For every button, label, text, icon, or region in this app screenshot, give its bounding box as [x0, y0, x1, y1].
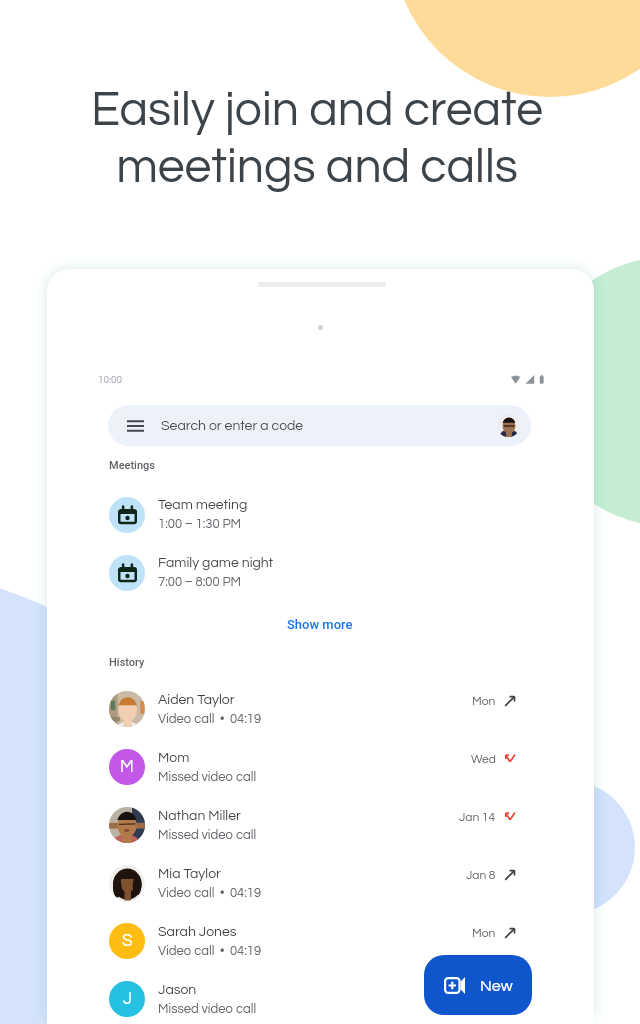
- staticText: Video call • 04:19: [158, 886, 262, 899]
- button[interactable]: Search or enter a code: [108, 405, 531, 446]
- staticText: Search or enter a code: [161, 419, 304, 433]
- staticText: Missed video call: [158, 828, 257, 841]
- button[interactable]: Aiden Taylor: [109, 691, 515, 727]
- staticText: M: [120, 758, 134, 776]
- staticText: S: [122, 932, 133, 950]
- button[interactable]: Team meeting: [109, 497, 409, 533]
- staticText: Jan 8: [466, 869, 496, 881]
- staticText: Nathan Miller: [158, 809, 241, 823]
- staticText: Mon: [472, 927, 496, 939]
- button[interactable]: S: [109, 923, 515, 959]
- staticText: 7:00 – 8:00 PM: [158, 575, 242, 588]
- staticText: Wed: [471, 753, 496, 765]
- button[interactable]: Nathan Miller: [109, 807, 515, 843]
- staticText: J: [123, 990, 132, 1008]
- staticText: Jason: [158, 983, 197, 997]
- staticText: Meetings: [109, 459, 155, 472]
- button[interactable]: J: [109, 981, 515, 1017]
- staticText: Family game night: [158, 556, 274, 570]
- staticText: Video call • 04:19: [158, 712, 262, 725]
- staticText: Missed video call: [158, 1002, 257, 1015]
- staticText: Mia Taylor: [158, 867, 221, 881]
- button[interactable]: M: [109, 749, 515, 785]
- staticText: New: [480, 978, 513, 994]
- staticText: Mon: [472, 695, 496, 707]
- staticText: Mom: [158, 751, 190, 765]
- staticText: Easily join and create meetings and call…: [91, 86, 543, 192]
- button[interactable]: Family game night: [109, 555, 409, 591]
- staticText: Jan 14: [459, 811, 496, 823]
- staticText: History: [109, 656, 145, 669]
- staticText: Team meeting: [158, 498, 248, 512]
- button[interactable]: Show more: [272, 609, 368, 639]
- staticText: Video call • 04:19: [158, 944, 262, 957]
- staticText: 10:00: [98, 375, 123, 385]
- staticText: Show more: [287, 617, 353, 632]
- staticText: 1:00 – 1:30 PM: [158, 517, 242, 530]
- button[interactable]: Mia Taylor: [109, 865, 515, 901]
- staticText: Aiden Taylor: [158, 693, 235, 707]
- staticText: Missed video call: [158, 770, 257, 783]
- staticText: Sarah Jones: [158, 925, 237, 939]
- button[interactable]: New: [424, 955, 532, 1015]
